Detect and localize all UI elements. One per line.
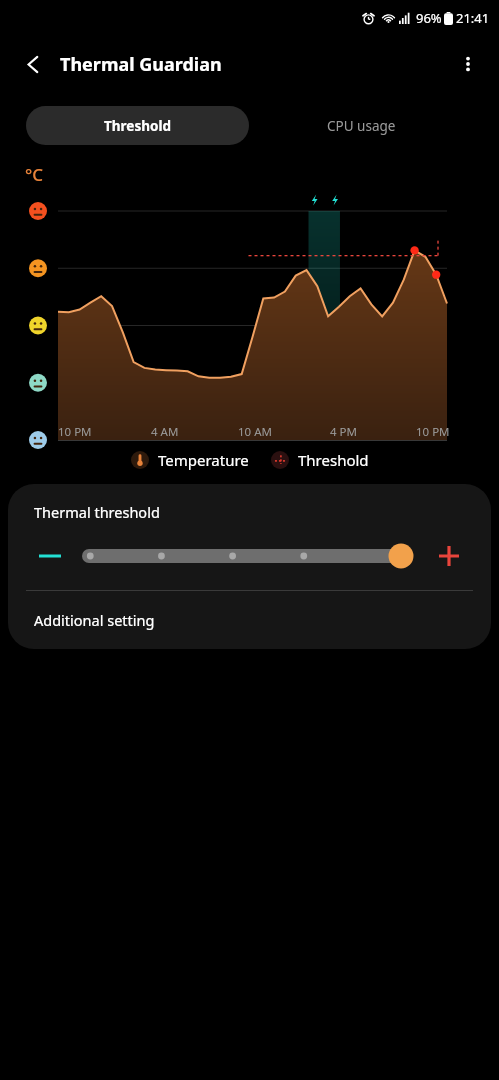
staticText: 10 PM: [58, 424, 92, 440]
staticText: Additional setting: [34, 610, 155, 630]
button[interactable]: Temperature: [131, 450, 249, 470]
staticText: Threshold: [104, 117, 171, 135]
button[interactable]: Threshold: [26, 106, 249, 145]
staticText: Temperature: [158, 450, 249, 470]
staticText: Threshold: [298, 450, 369, 470]
staticText: 21:41: [456, 9, 490, 27]
button[interactable]: Decrease threshold: [28, 534, 72, 578]
button[interactable]: Back: [12, 43, 54, 85]
staticText: 96%: [416, 9, 442, 27]
button[interactable]: Increase threshold: [427, 534, 471, 578]
staticText: 4 PM: [330, 424, 357, 440]
staticText: °C: [25, 163, 44, 186]
button[interactable]: Additional setting: [8, 591, 491, 649]
staticText: Thermal threshold: [34, 502, 160, 522]
button[interactable]: Threshold: [271, 450, 369, 470]
staticText: 10 PM: [416, 424, 450, 440]
staticText: Thermal Guardian: [60, 52, 222, 77]
staticText: 10 AM: [238, 424, 272, 440]
staticText: CPU usage: [327, 117, 396, 135]
button[interactable]: CPU usage: [249, 106, 473, 145]
staticText: 4 AM: [151, 424, 179, 440]
button[interactable]: More options: [445, 41, 491, 87]
button[interactable]: Thermal threshold slider: [82, 541, 413, 571]
